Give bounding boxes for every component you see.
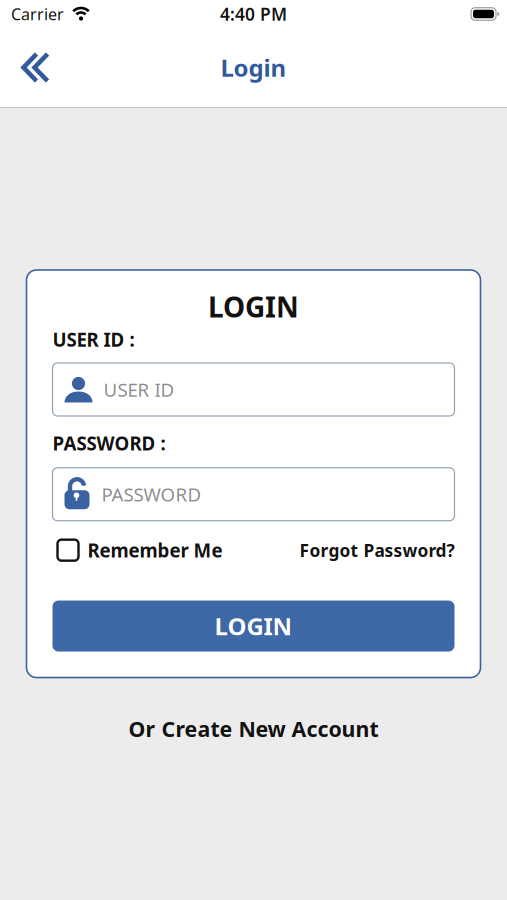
button[interactable]: Remember Me bbox=[52, 538, 222, 563]
button[interactable]: LOGIN bbox=[52, 601, 454, 652]
staticText: PASSWORD bbox=[101, 482, 201, 507]
button[interactable]: Forgot Password? bbox=[299, 539, 454, 562]
staticText: Remember Me bbox=[87, 538, 222, 563]
staticText: LOGIN bbox=[214, 610, 292, 642]
staticText: LOGIN bbox=[208, 288, 299, 325]
staticText: Carrier bbox=[11, 3, 64, 25]
button[interactable]: PASSWORD bbox=[52, 456, 454, 521]
button[interactable]: USER ID bbox=[52, 352, 454, 416]
staticText: 4:40 PM bbox=[220, 2, 287, 25]
staticText: Or Create New Account bbox=[128, 715, 378, 743]
staticText: Forgot Password? bbox=[299, 539, 454, 562]
button[interactable]: Or Create New Account bbox=[128, 678, 378, 743]
staticText: PASSWORD : bbox=[52, 431, 165, 456]
button[interactable]: Back bbox=[0, 28, 49, 106]
staticText: Login bbox=[220, 52, 286, 83]
staticText: USER ID : bbox=[52, 327, 134, 352]
staticText: USER ID bbox=[103, 377, 174, 402]
